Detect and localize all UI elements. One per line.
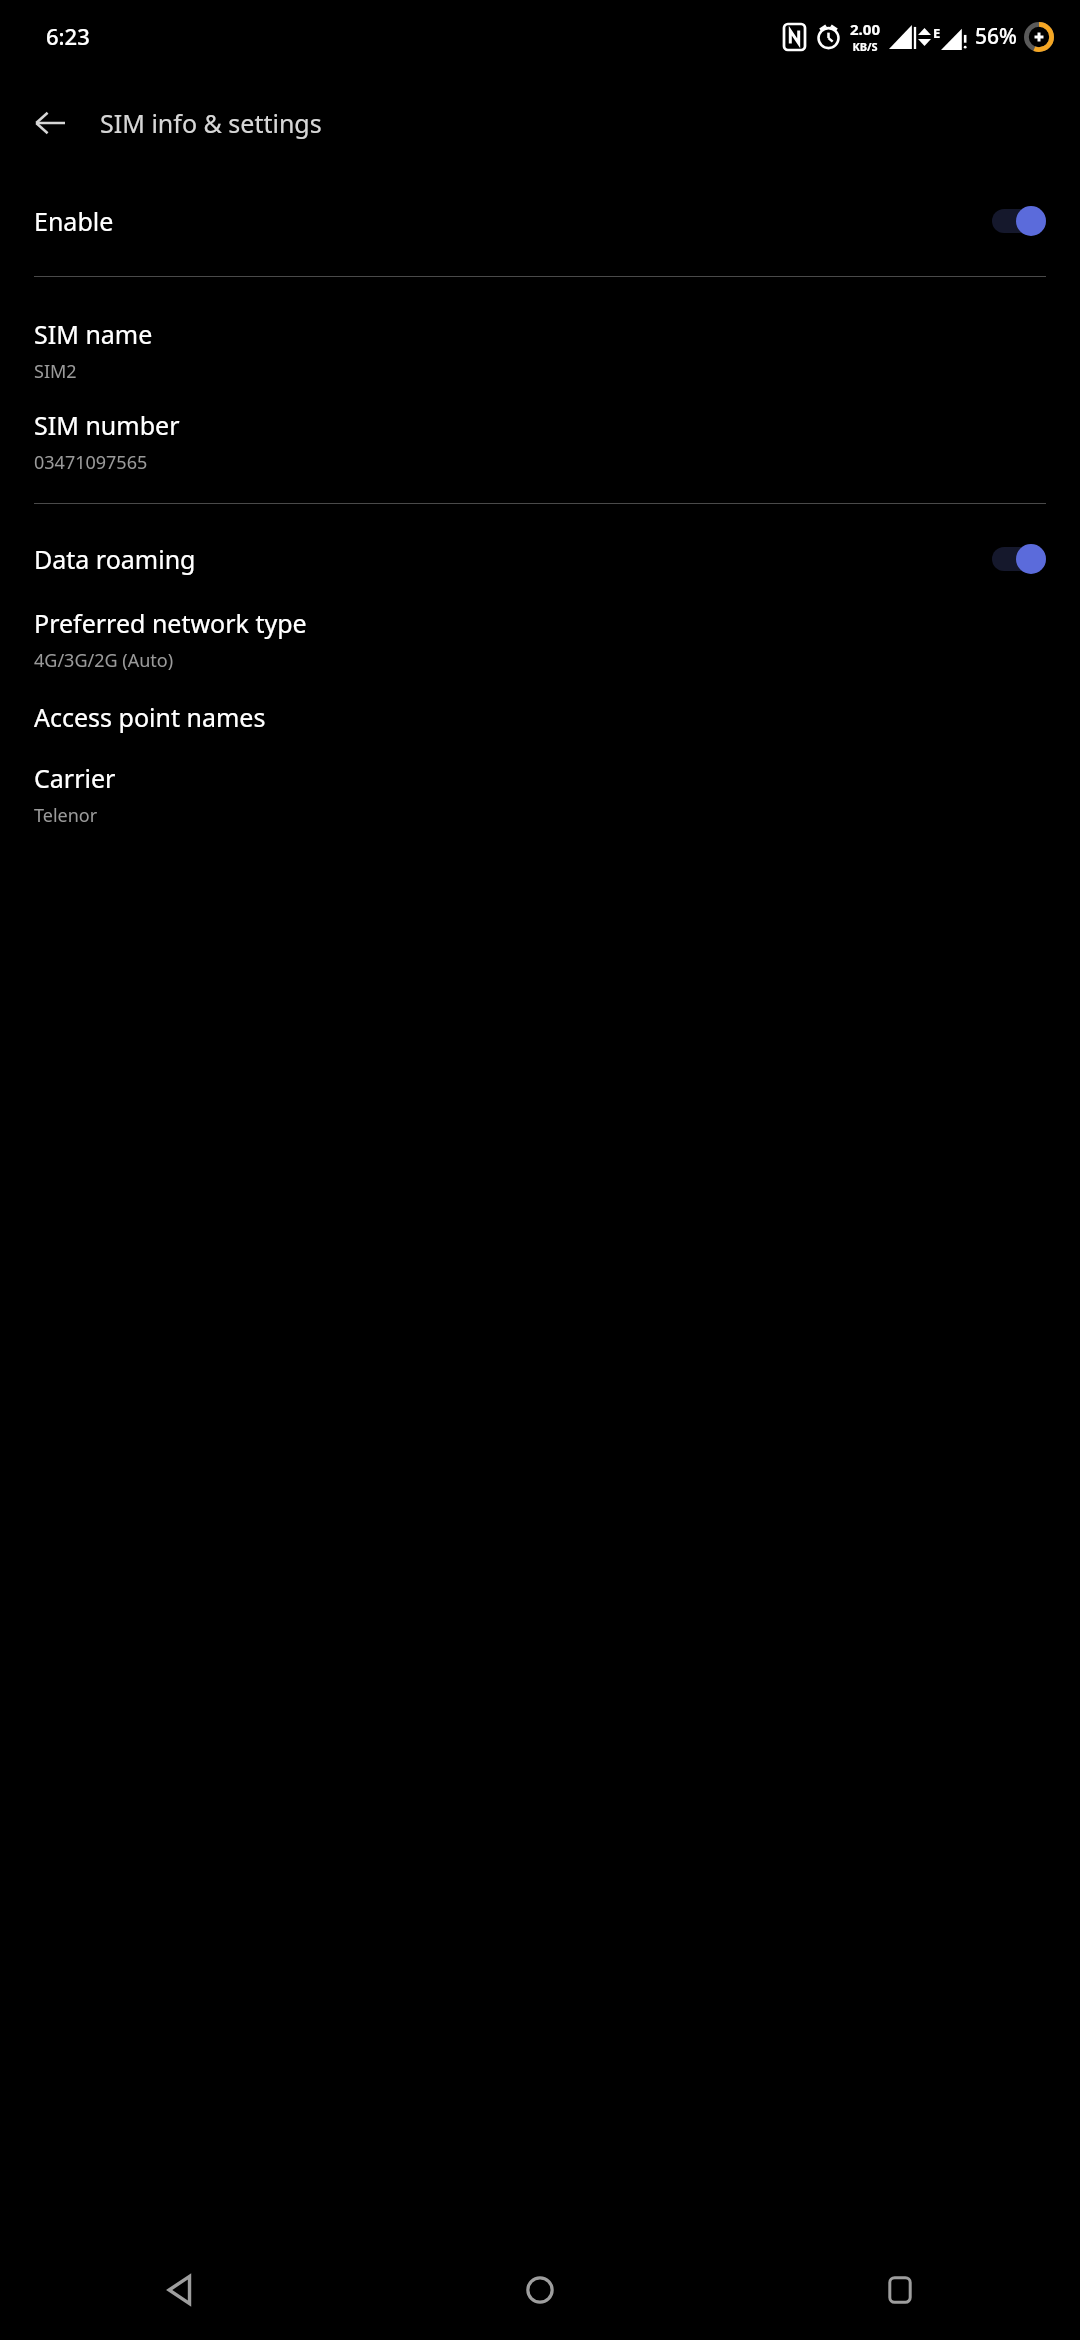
button[interactable]: SIM name [0,317,1080,384]
staticText: Enable [34,204,992,238]
button[interactable]: Home [360,2240,720,2340]
staticText: 2.00 [850,19,880,39]
staticText: KB/S [852,39,878,54]
staticText: Telenor [34,803,98,828]
staticText: SIM number [34,408,180,442]
button[interactable]: Data roaming [0,530,1080,588]
button[interactable]: Enable [0,174,1080,268]
staticText: SIM2 [34,359,77,384]
button[interactable]: Preferred network type [0,606,1080,673]
button[interactable]: SIM number [0,408,1080,475]
staticText: Carrier [34,761,116,795]
staticText: 6:23 [46,21,90,51]
button[interactable]: Back [22,95,78,151]
button[interactable]: Back [0,2240,360,2340]
button[interactable]: Recents [720,2240,1080,2340]
staticText: 4G/3G/2G (Auto) [34,648,174,673]
staticText: 56% [975,22,1017,51]
button[interactable]: Carrier [0,761,1080,828]
button[interactable]: Access point names [0,700,1080,734]
staticText: Access point names [34,700,266,734]
staticText: Preferred network type [34,606,307,640]
staticText: 03471097565 [34,450,148,475]
staticText: SIM info & settings [100,106,322,140]
staticText: Data roaming [34,542,992,576]
staticText: E [933,24,941,42]
staticText: SIM name [34,317,153,351]
